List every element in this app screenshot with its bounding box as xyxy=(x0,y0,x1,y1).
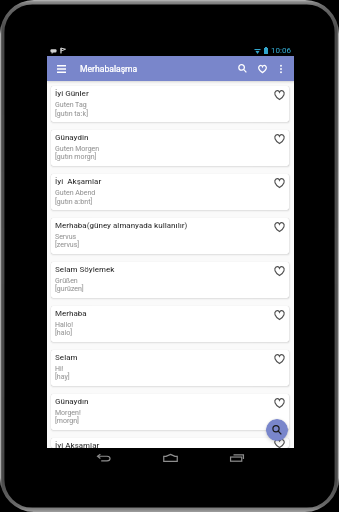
button[interactable]: İyi Günler xyxy=(51,86,289,122)
staticText: İyi Günler xyxy=(55,89,89,98)
staticText: [gurüzen] xyxy=(55,285,84,293)
button[interactable]: Günaydin xyxy=(51,130,289,166)
button[interactable]: Selam xyxy=(51,350,289,386)
button[interactable]: Add to favorites xyxy=(271,351,287,367)
staticText: [gutın aːbnt] xyxy=(55,197,93,207)
button[interactable]: Add to favorites xyxy=(271,131,287,147)
staticText: [gutın morgn] xyxy=(55,153,97,161)
staticText: Selam Söylemek xyxy=(55,265,115,274)
staticText: [halo] xyxy=(55,329,73,337)
staticText: İyi Akşamlar xyxy=(55,441,100,448)
staticText: [gutın taːk] xyxy=(55,109,89,119)
staticText: Servus xyxy=(55,233,77,241)
staticText: [zervus] xyxy=(55,241,80,249)
staticText: Hallo! xyxy=(55,321,74,329)
button[interactable]: Add to favorites xyxy=(271,263,287,279)
staticText: Guten Tag xyxy=(55,101,87,109)
staticText: İyi Akşamlar xyxy=(55,177,102,186)
staticText: Selam xyxy=(55,353,78,362)
button[interactable]: Search xyxy=(232,56,252,81)
button[interactable]: Search xyxy=(266,419,288,441)
staticText: Günaydın xyxy=(55,397,89,406)
staticText: Guten Morgen xyxy=(55,145,100,153)
button[interactable]: İyi Akşamlar xyxy=(51,438,289,448)
button[interactable]: Günaydın xyxy=(51,394,289,430)
staticText: [morgn] xyxy=(55,417,79,425)
button[interactable]: Add to favorites xyxy=(271,175,287,191)
button[interactable]: Merhaba(güney almanyada kullanılır) xyxy=(51,218,289,254)
staticText: [hay] xyxy=(55,373,70,381)
button[interactable]: Favorites xyxy=(252,56,272,81)
button[interactable]: Add to favorites xyxy=(271,307,287,323)
button[interactable]: Recent apps xyxy=(221,448,253,468)
button[interactable]: More options xyxy=(272,56,289,81)
button[interactable]: Add to favorites xyxy=(271,439,287,448)
staticText: Morgen! xyxy=(55,409,81,417)
button[interactable]: Selam Söylemek xyxy=(51,262,289,298)
staticText: Guten Abend xyxy=(55,189,96,197)
staticText: Günaydin xyxy=(55,133,89,142)
staticText: 10:06 xyxy=(271,46,291,55)
staticText: Merhabalaşma xyxy=(80,64,138,74)
button[interactable]: Back xyxy=(88,448,120,468)
button[interactable]: Home xyxy=(154,448,186,468)
button[interactable]: İyi Akşamlar xyxy=(51,174,289,210)
button[interactable]: Add to favorites xyxy=(271,219,287,235)
button[interactable]: Add to favorites xyxy=(271,395,287,411)
staticText: Merhaba(güney almanyada kullanılır) xyxy=(55,221,188,230)
staticText: Grüßen xyxy=(55,277,78,285)
button[interactable]: Navigation menu xyxy=(57,56,66,81)
staticText: Merhaba xyxy=(55,309,87,318)
button[interactable]: Add to favorites xyxy=(271,87,287,103)
staticText: Hi! xyxy=(55,365,64,373)
button[interactable]: Merhaba xyxy=(51,306,289,342)
